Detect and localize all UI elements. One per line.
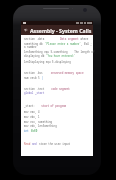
staticText: mov eax, 4 (24, 110, 40, 114)
staticText: something db (24, 42, 45, 46)
staticText: where (79, 37, 89, 41)
staticText: reserved memory space (43, 71, 84, 75)
staticText: The length of the message (68, 50, 96, 54)
staticText: _start: (24, 104, 35, 108)
staticText: global _start (24, 91, 45, 95)
staticText: lenSomething equ $-something (24, 50, 68, 54)
staticText: 0x80 (31, 129, 38, 133)
staticText: Data segment (60, 37, 79, 41)
staticText: mov ecx, something (24, 120, 53, 124)
staticText: mov edx, lenSomething (24, 124, 57, 128)
staticText: int (24, 129, 31, 133)
staticText: section .bss (24, 71, 43, 75)
staticText: a number (24, 45, 37, 49)
staticText: section .data (24, 37, 45, 41)
staticText: code segment (45, 87, 70, 91)
button[interactable]: Back (21, 25, 30, 35)
staticText: store the user input (39, 142, 71, 146)
staticText: start of program (35, 104, 67, 108)
staticText: Read (24, 142, 32, 146)
staticText: mov ebx, 1 (24, 115, 40, 119)
staticText: 'Please enter a number' (45, 42, 81, 46)
staticText: Assembly - System Calls (30, 27, 92, 34)
staticText: num resb 5 (24, 76, 42, 80)
staticText: | (42, 76, 44, 80)
staticText: 'You have entered:' (46, 54, 76, 58)
staticText: , 0xA ; the user is asked (81, 42, 96, 46)
staticText: section .text (24, 87, 45, 91)
staticText: and (32, 142, 39, 146)
staticText: lenDisplaying equ $-displaying (24, 60, 71, 64)
staticText: displaying db (24, 54, 46, 58)
